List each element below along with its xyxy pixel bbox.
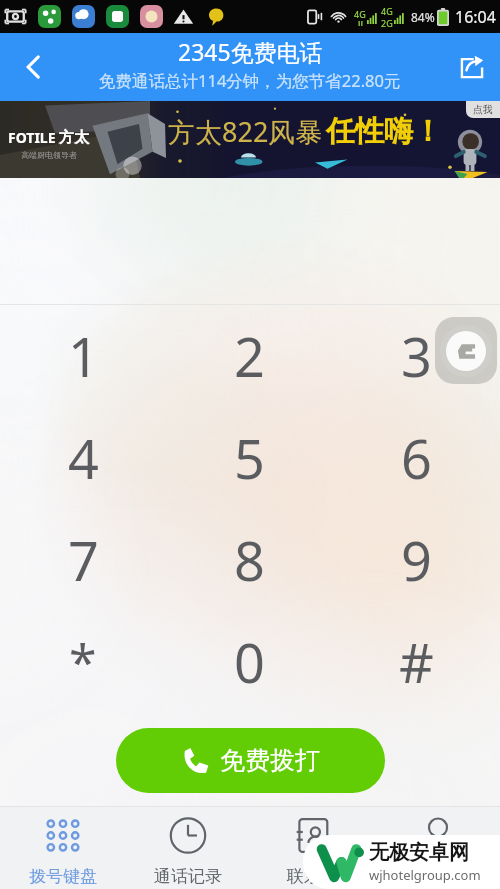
staticText: 方太 — [59, 128, 89, 147]
staticText: 7 — [68, 523, 99, 597]
staticText: * — [69, 628, 97, 696]
staticText: 8 — [234, 523, 265, 597]
button[interactable]: 1 — [0, 305, 166, 407]
staticText: 16:04 — [455, 6, 496, 28]
staticText: 免费拨打 — [220, 745, 320, 776]
button[interactable]: 3 — [333, 305, 500, 407]
staticText: 联系人 — [287, 866, 338, 887]
staticText: 无极安卓网 — [369, 840, 469, 865]
button[interactable]: 2 — [166, 305, 333, 407]
button[interactable]: 0 — [166, 611, 333, 713]
staticText: 6 — [401, 421, 432, 495]
staticText: wjhotelgroup.com — [369, 866, 481, 884]
staticText: 2 — [234, 319, 265, 393]
button[interactable]: 点我 — [473, 103, 493, 116]
button[interactable]: Share — [444, 33, 500, 101]
button[interactable]: # — [333, 611, 500, 713]
staticText: 0 — [234, 625, 265, 699]
staticText: FOTILE — [8, 128, 56, 147]
staticText: 4G — [354, 8, 366, 20]
button[interactable]: * — [0, 611, 166, 713]
button[interactable]: 通话记录 — [125, 818, 250, 889]
staticText: # — [399, 625, 434, 699]
staticText: 点我 — [473, 103, 493, 116]
staticText: 5 — [234, 421, 265, 495]
button[interactable]: 联系人 — [250, 818, 375, 889]
button[interactable]: Assistive button — [435, 317, 497, 384]
staticText: 2G — [381, 17, 393, 29]
staticText: 任性嗨！ — [326, 113, 442, 150]
staticText: 高端厨电领导者 — [21, 150, 77, 160]
button[interactable]: 免费拨打 — [116, 728, 385, 793]
staticText: 我的 — [421, 866, 455, 887]
button[interactable]: 8 — [166, 509, 333, 611]
button[interactable]: 7 — [0, 509, 166, 611]
staticText: 3 — [401, 319, 432, 393]
staticText: 4G — [381, 5, 393, 17]
button[interactable]: 5 — [166, 407, 333, 509]
button[interactable]: 4 — [0, 407, 166, 509]
staticText: 拨号键盘 — [29, 866, 97, 887]
staticText: 1 — [68, 319, 99, 393]
staticText: 通话记录 — [154, 866, 222, 887]
button[interactable]: 我的 — [375, 818, 500, 889]
staticText: 9 — [401, 523, 432, 597]
staticText: 免费通话总计114分钟，为您节省22.80元 — [99, 69, 401, 92]
staticText: 4 — [68, 421, 99, 495]
staticText: 方太822风暴 — [168, 113, 323, 150]
button[interactable]: 6 — [333, 407, 500, 509]
staticText: 84% — [411, 9, 435, 25]
button[interactable]: Back — [0, 33, 66, 101]
button[interactable]: 9 — [333, 509, 500, 611]
button[interactable]: 拨号键盘 — [0, 818, 125, 889]
staticText: 2345免费电话 — [178, 36, 323, 67]
